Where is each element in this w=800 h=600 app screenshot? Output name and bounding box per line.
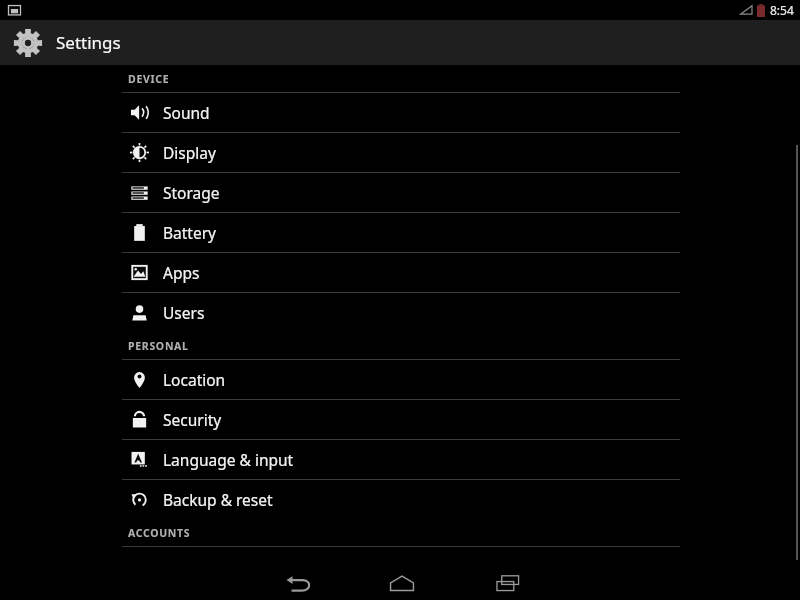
- button[interactable]: Apps: [0, 253, 800, 292]
- button[interactable]: Recent apps: [468, 565, 548, 600]
- other: Settings app icon: [13, 28, 43, 58]
- button[interactable]: Storage: [0, 173, 800, 212]
- staticText: Language & input: [163, 449, 294, 470]
- staticText: Settings: [56, 31, 121, 54]
- staticText: ACCOUNTS: [128, 526, 191, 540]
- staticText: Storage: [163, 182, 220, 203]
- button[interactable]: Settings app icon: [0, 20, 800, 65]
- button[interactable]: Security: [0, 400, 800, 439]
- staticText: Security: [163, 409, 222, 430]
- button[interactable]: Display: [0, 133, 800, 172]
- staticText: Display: [163, 142, 216, 163]
- button[interactable]: Users: [0, 293, 800, 332]
- staticText: PERSONAL: [128, 339, 189, 353]
- button[interactable]: Sound: [0, 93, 800, 132]
- staticText: Sound: [163, 102, 210, 123]
- staticText: Battery: [163, 222, 217, 243]
- staticText: Location: [163, 369, 226, 390]
- staticText: Apps: [163, 262, 200, 283]
- button[interactable]: Home: [362, 565, 442, 600]
- staticText: Users: [163, 302, 205, 323]
- button[interactable]: Backup & reset: [0, 480, 800, 519]
- button[interactable]: Location: [0, 360, 800, 399]
- button[interactable]: Back: [258, 565, 338, 600]
- staticText: Backup & reset: [163, 489, 273, 510]
- button[interactable]: Language & input: [0, 440, 800, 479]
- button[interactable]: Battery: [0, 213, 800, 252]
- staticText: DEVICE: [128, 72, 170, 86]
- staticText: 8:54: [770, 2, 794, 18]
